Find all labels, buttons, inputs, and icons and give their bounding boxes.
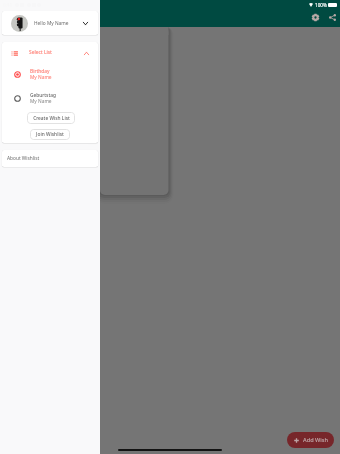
staticText: Join Wishlist	[36, 131, 64, 138]
button[interactable]: Add Wish	[287, 432, 334, 448]
button[interactable]: Create Wish List	[27, 112, 75, 124]
button[interactable]: Share	[325, 10, 340, 25]
staticText: About Wishlist	[7, 155, 40, 162]
button[interactable]: Join Wishlist	[30, 129, 70, 140]
staticText: My Name	[30, 74, 52, 81]
staticText: Add Wish	[303, 436, 329, 444]
button[interactable]: Geburtstag	[2, 87, 98, 111]
staticText: My Name	[30, 98, 52, 105]
button[interactable]: About Wishlist	[2, 150, 98, 167]
staticText: Select List	[29, 49, 52, 56]
staticText: 100%	[315, 2, 327, 8]
button[interactable]: Hello My Name	[2, 11, 98, 35]
button[interactable]: Settings	[308, 10, 323, 25]
staticText: Birthday	[30, 68, 50, 75]
button[interactable]: Select List	[2, 42, 98, 64]
button[interactable]: Birthday	[2, 63, 98, 87]
staticText: Create Wish List	[33, 115, 70, 122]
staticText: Geburtstag	[30, 92, 56, 99]
staticText: Hello My Name	[34, 20, 69, 27]
